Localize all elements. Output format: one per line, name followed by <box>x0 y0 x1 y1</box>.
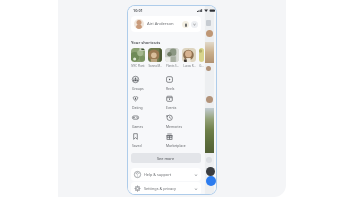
staticText: Your shortcuts <box>131 40 161 45</box>
button[interactable]: Saved <box>132 133 166 152</box>
staticText: Games <box>132 124 144 129</box>
button[interactable]: Help & support <box>131 168 201 181</box>
staticText: Plants S... <box>166 64 179 68</box>
staticText: Sanna M... <box>148 64 162 68</box>
staticText: Events <box>166 105 177 110</box>
staticText: Dating <box>132 105 143 110</box>
button[interactable]: Reels <box>166 76 201 95</box>
button[interactable]: Dating <box>132 95 166 114</box>
button[interactable]: G... <box>199 48 204 68</box>
staticText: See more <box>157 156 175 161</box>
staticText: Reels <box>166 86 175 91</box>
staticText: G... <box>199 64 204 68</box>
button[interactable]: NYC Plant <box>131 48 145 68</box>
staticText: Memories <box>166 124 183 129</box>
button[interactable]: Games <box>132 114 166 133</box>
staticText: Settings & privacy <box>144 186 176 191</box>
staticText: Marketplace <box>166 143 186 148</box>
staticText: Lucas R... <box>183 64 196 68</box>
staticText: Saved <box>132 143 142 148</box>
staticText: 10:01 <box>133 8 143 13</box>
button[interactable]: Memories <box>166 114 201 133</box>
button[interactable]: Groups <box>132 76 166 95</box>
button[interactable]: Plants S... <box>165 48 179 68</box>
button[interactable]: Switch account <box>182 21 189 28</box>
staticText: NYC Plant <box>131 64 145 68</box>
staticText: Airi Anderson <box>147 21 174 27</box>
button[interactable]: Marketplace <box>166 133 201 152</box>
button[interactable]: Airi Anderson <box>131 16 201 32</box>
button[interactable]: Sanna M... <box>148 48 162 68</box>
button[interactable]: Events <box>166 95 201 114</box>
staticText: Help & support <box>144 172 172 177</box>
staticText: Groups <box>132 86 144 91</box>
button[interactable]: See more <box>131 153 201 163</box>
button[interactable]: Settings & privacy <box>131 182 201 194</box>
button[interactable]: Expand profile <box>191 21 198 28</box>
button[interactable]: Lucas R... <box>182 48 196 68</box>
